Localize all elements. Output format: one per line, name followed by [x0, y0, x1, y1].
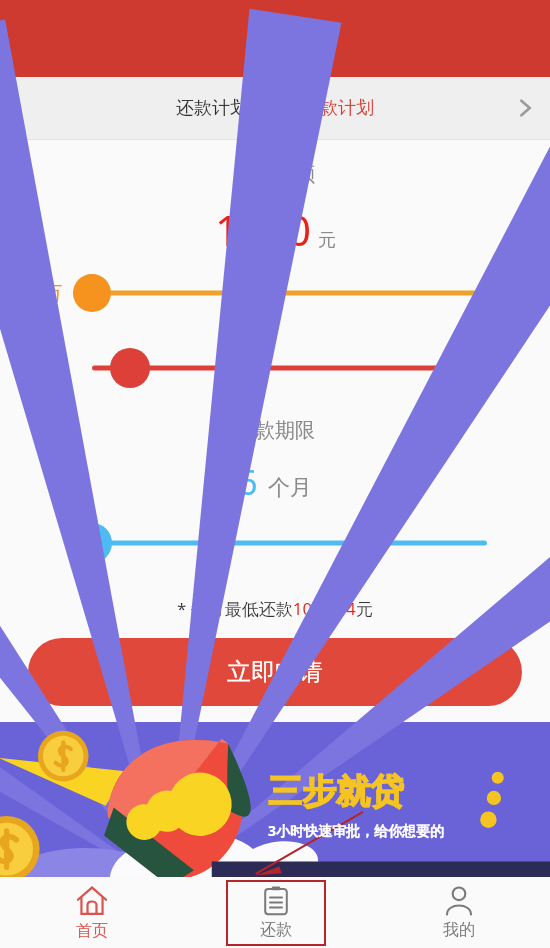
button[interactable]: 我的 — [409, 880, 509, 946]
staticText: * 每月最低还款1023.34元 — [177, 597, 373, 620]
button[interactable] — [0, 519, 550, 567]
staticText: 还款 — [260, 920, 292, 940]
staticText: 借款金额 — [235, 162, 315, 187]
staticText: 我的 — [443, 920, 475, 940]
staticText: 个月 — [268, 474, 312, 502]
button[interactable]: 万 — [0, 270, 550, 316]
staticText: 三步就贷 — [268, 770, 404, 813]
button[interactable]: 三步就贷 — [0, 722, 550, 877]
staticText: 6 — [238, 459, 258, 505]
staticText: 立即申请 — [227, 657, 323, 687]
staticText: 还款期限 — [235, 418, 315, 443]
staticText: 1000 — [215, 201, 312, 258]
button[interactable]: 首页 — [42, 880, 142, 946]
staticText: 万 — [42, 281, 62, 306]
staticText: 首页 — [76, 921, 108, 941]
button[interactable]: 千 — [0, 344, 550, 392]
button[interactable]: 立即申请 — [28, 638, 522, 706]
button[interactable]: 还款 — [226, 880, 326, 946]
staticText: 还款计划：暂无还款计划 — [176, 97, 374, 120]
staticText: 贷鱼 — [247, 21, 303, 56]
staticText: 3小时快速审批，给你想要的 — [268, 821, 445, 840]
button[interactable]: 还款计划：暂无还款计划 — [0, 77, 550, 139]
staticText: 元 — [318, 229, 336, 252]
